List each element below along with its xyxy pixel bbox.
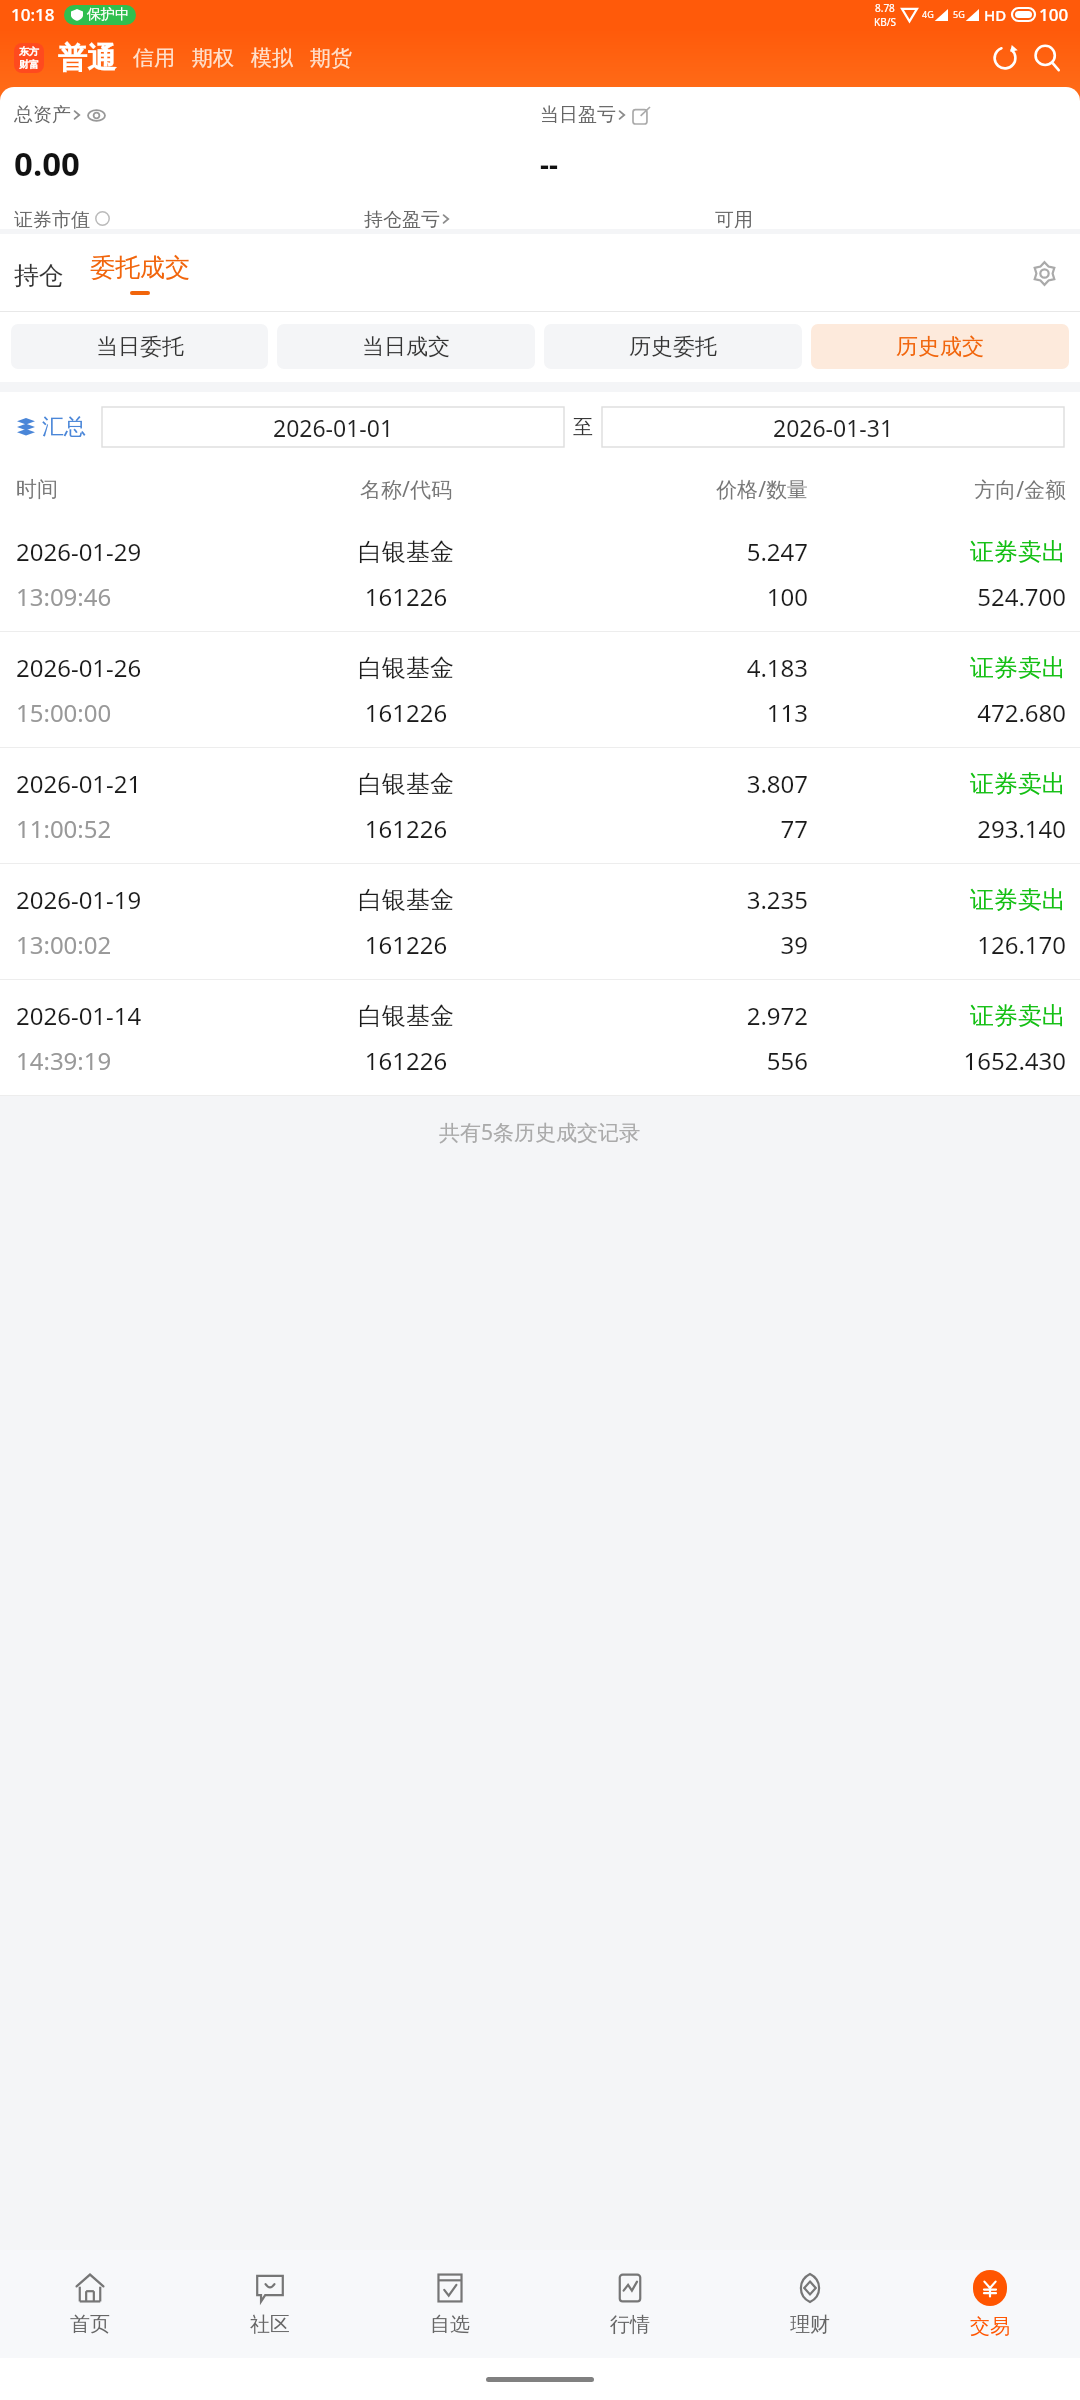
button[interactable]: 当日盈亏 bbox=[540, 103, 1066, 127]
button[interactable]: 设置 bbox=[1024, 253, 1064, 293]
button[interactable]: 2026-01-29 bbox=[0, 516, 1080, 631]
staticText: 161226 bbox=[272, 696, 540, 729]
staticText: 126.170 bbox=[822, 928, 1066, 961]
button[interactable]: 刷新 bbox=[988, 41, 1022, 75]
button[interactable]: 2026-01-19 bbox=[0, 864, 1080, 979]
button[interactable]: 搜索 bbox=[1030, 41, 1064, 75]
button[interactable]: 汇总 bbox=[16, 413, 86, 441]
staticText: 交易 bbox=[970, 2314, 1010, 2339]
staticText: 名称/代码 bbox=[272, 475, 540, 504]
staticText: 2026-01-19 bbox=[16, 883, 272, 916]
staticText: 白银基金 bbox=[272, 653, 540, 683]
button[interactable]: 信用 bbox=[133, 45, 175, 71]
staticText: 东方 bbox=[19, 45, 39, 58]
button[interactable]: 自选 bbox=[360, 2250, 540, 2358]
staticText: 77 bbox=[540, 812, 808, 845]
staticText: 财富 bbox=[19, 58, 39, 71]
staticText: 信用 bbox=[133, 45, 175, 71]
staticText: 模拟 bbox=[251, 45, 293, 71]
button[interactable]: 持仓盈亏 bbox=[364, 208, 715, 229]
staticText: 汇总 bbox=[42, 413, 86, 441]
staticText: 100 bbox=[1039, 3, 1069, 26]
button[interactable]: 可用 bbox=[715, 208, 1066, 229]
staticText: 5G bbox=[953, 8, 965, 20]
staticText: 2026-01-21 bbox=[16, 767, 272, 800]
staticText: 行情 bbox=[610, 2312, 650, 2337]
staticText: 证券卖出 bbox=[822, 1001, 1066, 1031]
staticText: 2026-01-26 bbox=[16, 651, 272, 684]
staticText: 持仓盈亏 bbox=[364, 208, 440, 229]
button[interactable]: 总资产 bbox=[14, 103, 540, 127]
staticText: 保护中 bbox=[87, 6, 129, 24]
staticText: 100 bbox=[540, 580, 808, 613]
button[interactable]: 证券市值 bbox=[14, 208, 364, 229]
staticText: 161226 bbox=[272, 580, 540, 613]
staticText: 证券卖出 bbox=[822, 653, 1066, 683]
staticText: 白银基金 bbox=[272, 1001, 540, 1031]
staticText: -- bbox=[540, 145, 558, 183]
button[interactable]: 2026-01-01 bbox=[102, 407, 564, 447]
button[interactable]: 东方财富 bbox=[14, 43, 44, 73]
button[interactable]: 首页 bbox=[0, 2250, 180, 2358]
button[interactable]: 当日委托 bbox=[11, 324, 268, 369]
staticText: 4G bbox=[922, 8, 934, 20]
staticText: 共有5条历史成交记录 bbox=[439, 1118, 641, 1147]
button[interactable]: 2026-01-26 bbox=[0, 632, 1080, 747]
button[interactable]: 当日成交 bbox=[277, 324, 535, 369]
button[interactable]: 历史成交 bbox=[811, 324, 1069, 369]
staticText: 可用 bbox=[715, 208, 753, 229]
staticText: 证券卖出 bbox=[822, 885, 1066, 915]
button[interactable]: 理财 bbox=[720, 2250, 900, 2358]
button[interactable]: 2026-01-21 bbox=[0, 748, 1080, 863]
staticText: 白银基金 bbox=[272, 885, 540, 915]
button[interactable]: 模拟 bbox=[251, 45, 293, 71]
staticText: 历史成交 bbox=[896, 333, 984, 361]
staticText: 当日成交 bbox=[362, 333, 450, 361]
staticText: 3.235 bbox=[540, 883, 808, 916]
staticText: 2026-01-01 bbox=[273, 412, 394, 443]
staticText: 13:09:46 bbox=[16, 580, 272, 613]
button[interactable]: 行情 bbox=[540, 2250, 720, 2358]
staticText: 0.00 bbox=[14, 141, 540, 186]
staticText: 161226 bbox=[272, 928, 540, 961]
staticText: 3.807 bbox=[540, 767, 808, 800]
staticText: 社区 bbox=[250, 2312, 290, 2337]
staticText: HD bbox=[984, 5, 1007, 25]
staticText: 161226 bbox=[272, 1044, 540, 1077]
staticText: 1652.430 bbox=[822, 1044, 1066, 1077]
button[interactable]: 期货 bbox=[310, 45, 352, 71]
staticText: 至 bbox=[573, 415, 593, 440]
button[interactable]: 社区 bbox=[180, 2250, 360, 2358]
button[interactable]: 期权 bbox=[192, 45, 234, 71]
staticText: 当日盈亏 bbox=[540, 103, 616, 127]
staticText: 2.972 bbox=[540, 999, 808, 1032]
staticText: 价格/数量 bbox=[540, 475, 808, 504]
staticText: 10:18 bbox=[11, 3, 55, 26]
button[interactable]: 交易 bbox=[900, 2250, 1080, 2358]
staticText: 持仓 bbox=[14, 260, 64, 291]
button[interactable]: 2026-01-31 bbox=[602, 407, 1064, 447]
button[interactable]: 历史委托 bbox=[544, 324, 802, 369]
staticText: 11:00:52 bbox=[16, 812, 272, 845]
staticText: 13:00:02 bbox=[16, 928, 272, 961]
button[interactable]: 持仓 bbox=[14, 256, 64, 291]
staticText: 首页 bbox=[70, 2312, 110, 2337]
button[interactable]: 普通 bbox=[58, 40, 116, 77]
staticText: 2026-01-31 bbox=[773, 412, 894, 443]
staticText: 自选 bbox=[430, 2312, 470, 2337]
staticText: 2026-01-14 bbox=[16, 999, 272, 1032]
staticText: 293.140 bbox=[822, 812, 1066, 845]
staticText: 472.680 bbox=[822, 696, 1066, 729]
staticText: 白银基金 bbox=[272, 537, 540, 567]
staticText: 161226 bbox=[272, 812, 540, 845]
staticText: 556 bbox=[540, 1044, 808, 1077]
staticText: 当日委托 bbox=[96, 333, 184, 361]
staticText: 15:00:00 bbox=[16, 696, 272, 729]
staticText: 4.183 bbox=[540, 651, 808, 684]
staticText: 白银基金 bbox=[272, 769, 540, 799]
button[interactable]: 2026-01-14 bbox=[0, 980, 1080, 1095]
button[interactable]: 委托成交 bbox=[90, 252, 190, 295]
staticText: 524.700 bbox=[822, 580, 1066, 613]
staticText: 5.247 bbox=[540, 535, 808, 568]
staticText: 理财 bbox=[790, 2312, 830, 2337]
